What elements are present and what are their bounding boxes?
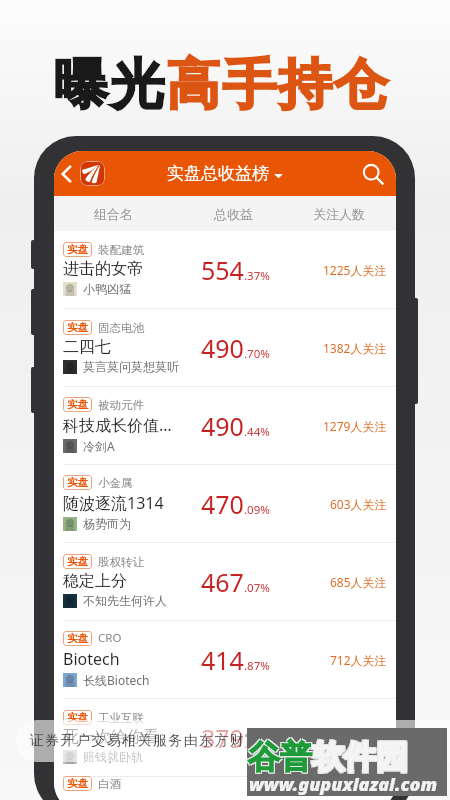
staticText: 被动元件 <box>98 398 144 412</box>
staticText: 554 <box>201 253 244 287</box>
staticText: 685人关注 <box>330 574 387 590</box>
staticText: 不知先生何许人 <box>83 593 167 608</box>
staticText: .12% <box>244 736 270 752</box>
staticText: 稳定上分 <box>63 571 127 591</box>
staticText: 死一次给你看 <box>63 727 159 747</box>
staticText: 莫言莫问莫想莫听 <box>83 359 179 374</box>
button[interactable]: 实盘 <box>54 543 396 621</box>
staticText: 实盘 <box>67 243 88 256</box>
staticText: 实盘 <box>67 777 88 790</box>
staticText: 379 <box>201 721 244 755</box>
staticText: 长线Biotech <box>83 672 150 688</box>
staticText: 谷普软件园 <box>247 738 407 778</box>
button[interactable]: 实盘总收益榜 <box>167 163 283 184</box>
staticText: 1382人关注 <box>323 340 387 356</box>
staticText: 进击的女帝 <box>63 259 143 279</box>
button[interactable]: 实盘 <box>54 699 396 777</box>
staticText: 软件园 <box>312 737 408 777</box>
staticText: 高手持仓 <box>165 51 389 119</box>
staticText: 实盘 <box>67 476 88 489</box>
staticText: 随波逐流1314 <box>63 492 164 514</box>
button[interactable]: App logo <box>80 161 105 186</box>
staticText: 712人关注 <box>330 652 387 668</box>
staticText: 二四七 <box>63 337 111 357</box>
staticText: .09% <box>244 502 270 518</box>
staticText: 工业互联 <box>98 711 144 725</box>
staticText: 小金属 <box>98 476 133 490</box>
button[interactable]: Back <box>54 160 82 188</box>
staticText: 总收益 <box>214 206 253 222</box>
button[interactable]: Search <box>356 157 390 191</box>
staticText: 冷剑A <box>83 438 115 454</box>
staticText: .44% <box>244 424 270 440</box>
staticText: .37% <box>244 268 270 284</box>
staticText: 装配建筑 <box>98 243 144 257</box>
button[interactable]: 实盘 <box>54 309 396 387</box>
staticText: 实盘总收益榜 <box>167 163 269 184</box>
button[interactable]: 实盘 <box>54 387 396 465</box>
staticText: 股权转让 <box>98 555 144 569</box>
staticText: 杨势而为 <box>83 516 131 531</box>
button[interactable]: 实盘 <box>54 621 396 699</box>
staticText: .07% <box>244 580 270 596</box>
staticText: 谷普软件园 <box>249 738 409 778</box>
staticText: 组合名 <box>94 206 133 222</box>
staticText: 实盘 <box>67 711 88 724</box>
staticText: 实盘 <box>67 321 88 334</box>
staticText: 科技成长价值… <box>63 414 172 436</box>
button[interactable]: 实盘 <box>54 777 396 800</box>
staticText: 1225人关注 <box>323 262 387 278</box>
button[interactable]: 实盘 <box>54 231 396 309</box>
staticText: 曝光 <box>53 51 165 119</box>
staticText: 467 <box>201 565 244 599</box>
staticText: 490 <box>201 331 244 365</box>
staticText: 490 <box>201 409 244 443</box>
button[interactable]: 实盘 <box>54 465 396 543</box>
staticText: .70% <box>244 346 270 362</box>
staticText: 赔钱就卧轨 <box>83 749 143 764</box>
staticText: 小鸭凶猛 <box>83 281 131 296</box>
staticText: 实盘 <box>67 632 88 645</box>
staticText: .87% <box>244 658 270 674</box>
staticText: 谷普软件园 <box>249 736 409 776</box>
staticText: 470 <box>201 487 244 521</box>
staticText: 关注人数 <box>313 206 365 222</box>
staticText: 414 <box>201 643 244 677</box>
staticText: 实盘 <box>67 398 88 411</box>
staticText: Biotech <box>63 648 120 670</box>
staticText: 证券开户交易相关服务由东方财富证券股份有限公司提供 <box>29 732 414 750</box>
staticText: 603人关注 <box>330 496 387 512</box>
staticText: 白酒 <box>98 777 121 791</box>
staticText: 实盘 <box>67 555 88 568</box>
staticText: 谷普软件园 <box>247 736 407 776</box>
staticText: www.gupuxlazal.com <box>249 772 438 797</box>
staticText: CRO <box>98 630 122 646</box>
staticText: 谷普 <box>248 737 312 777</box>
staticText: 1279人关注 <box>323 418 387 434</box>
staticText: 固态电池 <box>98 321 144 335</box>
